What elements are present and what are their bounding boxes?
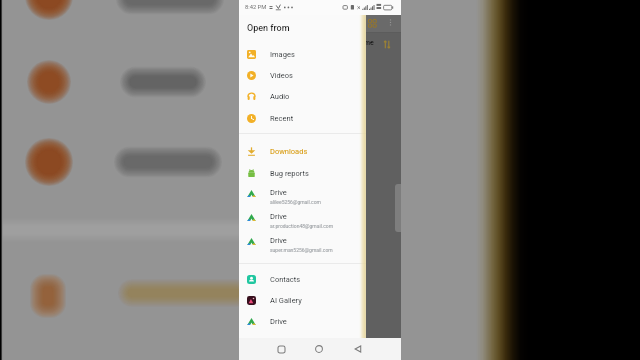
- staticText: ar.production48@gmail.com: [270, 223, 334, 229]
- button[interactable]: Recents: [273, 341, 289, 357]
- staticText: 8:42 PM: [245, 4, 267, 11]
- button[interactable]: Contacts: [239, 269, 366, 290]
- button[interactable]: Drive: [239, 311, 366, 332]
- staticText: me: [364, 39, 374, 47]
- staticText: Drive: [270, 212, 287, 221]
- button[interactable]: AI Gallery: [239, 290, 366, 311]
- staticText: Bug reports: [270, 169, 309, 178]
- staticText: super.man5256@gmail.com: [270, 247, 333, 253]
- button[interactable]: Home: [311, 341, 327, 357]
- staticText: Videos: [270, 71, 293, 80]
- staticText: Audio: [270, 92, 290, 101]
- button[interactable]: Images: [239, 44, 366, 65]
- button[interactable]: Back: [350, 341, 366, 357]
- button[interactable]: Downloads: [239, 141, 366, 162]
- staticText: Drive: [270, 317, 287, 326]
- staticText: Drive: [270, 188, 287, 197]
- staticText: Downloads: [270, 147, 308, 156]
- staticText: Contacts: [270, 275, 301, 284]
- button[interactable]: Bug reports: [239, 163, 366, 184]
- staticText: Recent: [270, 114, 294, 123]
- button[interactable]: Audio: [239, 86, 366, 107]
- button[interactable]: Videos: [239, 65, 366, 86]
- staticText: Drive: [270, 236, 287, 245]
- button[interactable]: Drive: [239, 224, 366, 248]
- staticText: alilee5256@gmail.com: [270, 199, 321, 205]
- button[interactable]: Drive: [239, 176, 366, 200]
- staticText: AI Gallery: [270, 296, 302, 305]
- staticText: Images: [270, 50, 295, 59]
- button[interactable]: Recent: [239, 108, 366, 129]
- button[interactable]: Drive: [239, 200, 366, 224]
- staticText: Open from: [247, 23, 290, 34]
